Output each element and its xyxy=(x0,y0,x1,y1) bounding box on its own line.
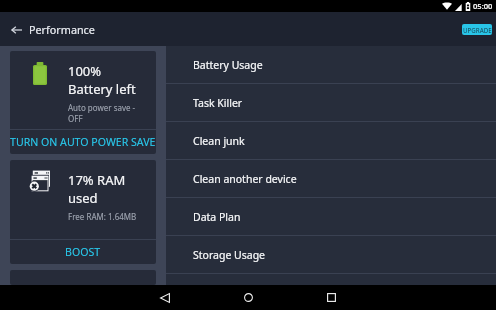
staticText: 05:00 xyxy=(473,1,493,11)
staticText: Battery Usage xyxy=(193,58,263,72)
staticText: Free RAM: 1.64MB xyxy=(68,211,137,222)
staticText: BOOST xyxy=(65,245,101,259)
staticText: Task Killer xyxy=(193,96,243,110)
staticText: Battery left xyxy=(68,80,136,98)
button[interactable]: UPGRADE xyxy=(462,24,492,35)
staticText: Clean junk xyxy=(193,134,245,148)
staticText: Data Plan xyxy=(193,210,241,224)
staticText: UPGRADE xyxy=(463,26,492,34)
button[interactable]: Data Plan xyxy=(166,198,496,235)
staticText: Storage Usage xyxy=(193,248,266,262)
button[interactable]: BOOST xyxy=(10,240,156,264)
button[interactable]: Back xyxy=(151,285,179,310)
button[interactable]: Back xyxy=(5,18,28,41)
button[interactable]: Battery Usage xyxy=(166,46,496,83)
button[interactable]: Clean junk xyxy=(166,122,496,159)
staticText: 17% RAM xyxy=(68,171,126,189)
button[interactable]: Task Killer xyxy=(166,84,496,121)
button[interactable]: Clean another device xyxy=(166,160,496,197)
button[interactable]: Storage Usage xyxy=(166,236,496,273)
button[interactable]: Home xyxy=(234,285,262,310)
staticText: Performance xyxy=(29,22,95,37)
staticText: 100% xyxy=(68,62,102,80)
button[interactable]: Recents xyxy=(317,285,345,310)
staticText: TURN ON AUTO POWER SAVE xyxy=(10,135,156,149)
staticText: Clean another device xyxy=(193,172,297,186)
staticText: used xyxy=(68,189,98,207)
staticText: Auto power save - OFF xyxy=(68,102,136,124)
button[interactable]: TURN ON AUTO POWER SAVE xyxy=(10,130,156,154)
